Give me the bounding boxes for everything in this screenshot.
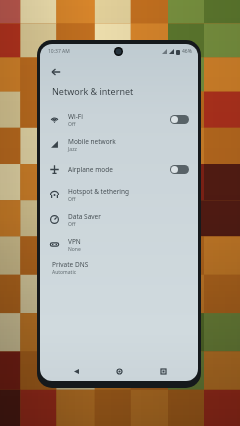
button[interactable]: Hotspot & tethering [40, 182, 198, 207]
button[interactable]: Wi-Fi [40, 107, 198, 132]
button[interactable]: Airplane mode toggle [170, 165, 189, 174]
button[interactable]: Data Saver [40, 207, 198, 232]
staticText: Off [68, 121, 76, 128]
staticText: Data Saver [68, 212, 101, 221]
staticText: Off [68, 221, 76, 228]
button[interactable]: VPN [40, 232, 198, 257]
staticText: Hotspot & tethering [68, 187, 130, 196]
button[interactable]: Back [45, 61, 67, 83]
staticText: Jazz [68, 146, 77, 153]
button[interactable]: Airplane mode [40, 157, 198, 182]
staticText: Mobile network [68, 137, 116, 146]
button[interactable]: Mobile network [40, 132, 198, 157]
staticText: 46% [182, 48, 192, 55]
staticText: VPN [68, 237, 81, 246]
staticText: None [68, 246, 81, 253]
staticText: Airplane mode [68, 165, 113, 174]
staticText: Off [68, 196, 76, 203]
staticText: Private DNS [52, 260, 89, 269]
button[interactable]: Wi-Fi toggle [170, 115, 189, 124]
button[interactable]: Private DNS [52, 260, 198, 281]
staticText: 10:37 AM [48, 48, 70, 55]
button[interactable]: Recents [155, 363, 171, 379]
staticText: Automatic [52, 269, 77, 276]
staticText: Wi-Fi [68, 112, 83, 121]
staticText: Network & internet [52, 85, 134, 97]
button[interactable]: Back [68, 363, 84, 379]
button[interactable]: Home [111, 363, 127, 379]
